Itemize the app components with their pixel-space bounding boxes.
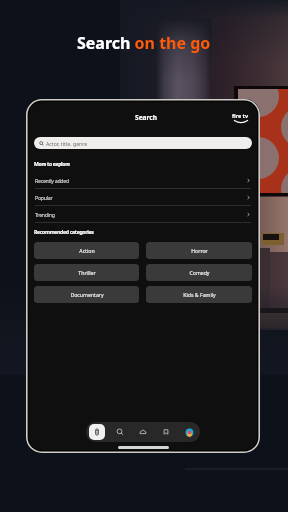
staticText: Documentary	[70, 291, 104, 298]
staticText: Comedy	[189, 269, 210, 276]
staticText: Popular	[35, 194, 53, 201]
button[interactable]: Trending	[29, 206, 257, 222]
button[interactable]: Actor, title, genre	[34, 137, 252, 149]
button[interactable]: Action	[34, 242, 139, 259]
staticText: Recently added	[35, 177, 69, 184]
staticText: Thriller	[78, 269, 96, 276]
button[interactable]: Comedy	[146, 264, 252, 281]
button[interactable]: Profile	[181, 424, 197, 440]
button[interactable]: Remote	[89, 424, 105, 440]
staticText: More to explore	[34, 161, 70, 168]
staticText: Trending	[35, 211, 55, 218]
staticText: Horror	[191, 247, 208, 254]
staticText: Recommended categories	[34, 229, 94, 236]
button[interactable]: Thriller	[34, 264, 139, 281]
staticText: Kids & Family	[183, 291, 216, 298]
button[interactable]: Kids & Family	[146, 286, 252, 303]
button[interactable]: Recently added	[29, 172, 257, 188]
button[interactable]: Home	[135, 424, 151, 440]
button[interactable]: Popular	[29, 189, 257, 205]
button[interactable]: Documentary	[34, 286, 139, 303]
staticText: fire tv	[232, 112, 249, 119]
button[interactable]: Bookmarks	[158, 424, 174, 440]
staticText: Action	[79, 247, 95, 254]
button[interactable]: Search	[112, 424, 128, 440]
staticText: Search	[135, 113, 158, 122]
button[interactable]: Horror	[146, 242, 252, 259]
staticText: Actor, title, genre	[46, 140, 88, 147]
staticText: Search on the go	[77, 32, 211, 54]
